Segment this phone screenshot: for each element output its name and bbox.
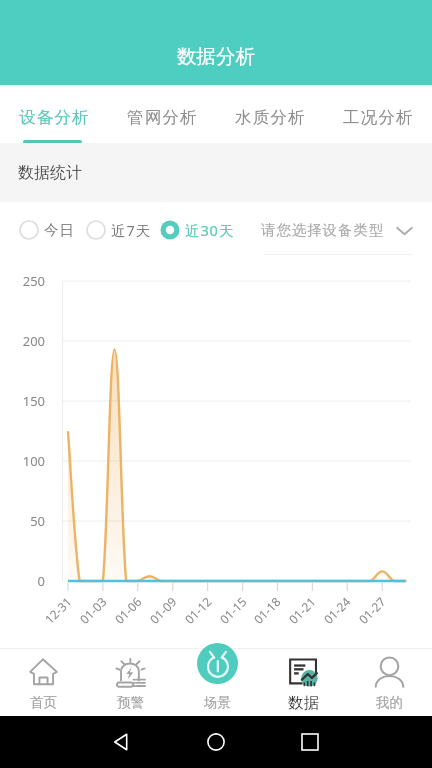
button[interactable]: 首页 (0, 648, 87, 716)
staticText: 01-15 (216, 593, 250, 627)
staticText: 200 (0, 332, 45, 350)
staticText: 预警 (117, 694, 144, 711)
button[interactable]: 水质分析 (216, 85, 324, 143)
staticText: 01-12 (181, 593, 215, 627)
button[interactable]: 请您选择设备类型 (261, 221, 413, 239)
staticText: 01-06 (111, 593, 145, 627)
button[interactable]: Back (100, 720, 144, 764)
staticText: 12-31 (41, 593, 75, 627)
staticText: 01-21 (285, 593, 319, 627)
staticText: 150 (0, 392, 45, 410)
button[interactable]: 数据 (260, 648, 346, 716)
button[interactable]: 近30天 (160, 220, 235, 240)
staticText: 01-09 (146, 593, 180, 627)
staticText: 请您选择设备类型 (261, 221, 385, 239)
staticText: 100 (0, 452, 45, 470)
staticText: 数据分析 (177, 44, 255, 69)
staticText: 近30天 (185, 220, 235, 240)
staticText: 01-27 (355, 593, 389, 627)
staticText: 250 (0, 272, 45, 290)
button[interactable]: 我的 (346, 648, 432, 716)
button[interactable]: 管网分析 (108, 85, 216, 143)
staticText: 近7天 (111, 220, 151, 240)
button[interactable]: 近7天 (86, 220, 151, 240)
staticText: 管网分析 (127, 107, 198, 128)
staticText: 01-03 (76, 593, 110, 627)
button[interactable]: 设备分析 (0, 85, 108, 143)
button[interactable]: Home (194, 720, 238, 764)
staticText: 设备分析 (19, 107, 90, 128)
staticText: 首页 (30, 694, 57, 711)
button[interactable]: Recents (288, 720, 332, 764)
staticText: 50 (0, 512, 45, 530)
staticText: 数据统计 (18, 163, 82, 183)
button[interactable]: 今日 (19, 220, 75, 240)
staticText: 01-18 (250, 593, 284, 627)
staticText: 今日 (44, 221, 75, 239)
staticText: 场景 (204, 694, 231, 711)
staticText: 水质分析 (235, 107, 306, 128)
staticText: 01-24 (320, 593, 354, 627)
button[interactable]: 场景 (174, 648, 260, 716)
staticText: 0 (0, 572, 45, 590)
button[interactable]: 工况分析 (324, 85, 432, 143)
staticText: 数据 (288, 693, 319, 713)
staticText: 我的 (376, 694, 403, 711)
staticText: 工况分析 (343, 107, 414, 128)
button[interactable]: 预警 (87, 648, 174, 716)
